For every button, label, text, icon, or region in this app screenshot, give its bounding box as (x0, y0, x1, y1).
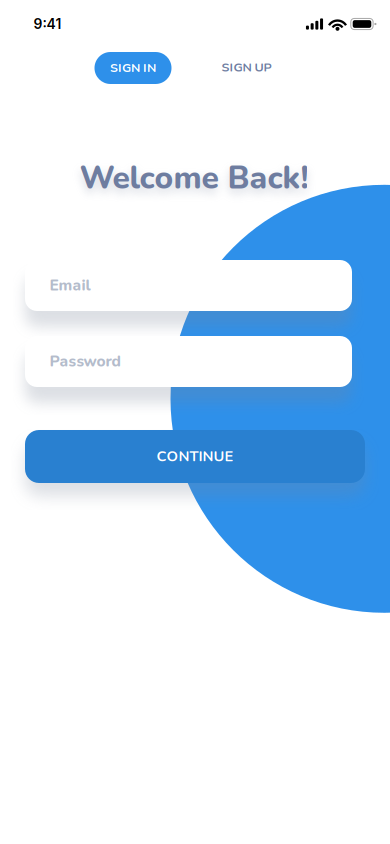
button[interactable]: Password (25, 336, 352, 387)
button[interactable]: Email (25, 260, 352, 311)
button[interactable]: CONTINUE (25, 430, 365, 483)
staticText: SIGN UP (221, 59, 271, 76)
button[interactable]: SIGN UP (203, 51, 289, 83)
staticText: Welcome Back! (79, 156, 308, 200)
button[interactable]: SIGN IN (94, 52, 171, 84)
staticText: SIGN IN (110, 59, 156, 77)
staticText: Password (49, 351, 120, 372)
staticText: Email (49, 275, 90, 296)
staticText: 9:41 (33, 16, 61, 32)
staticText: CONTINUE (156, 446, 233, 466)
